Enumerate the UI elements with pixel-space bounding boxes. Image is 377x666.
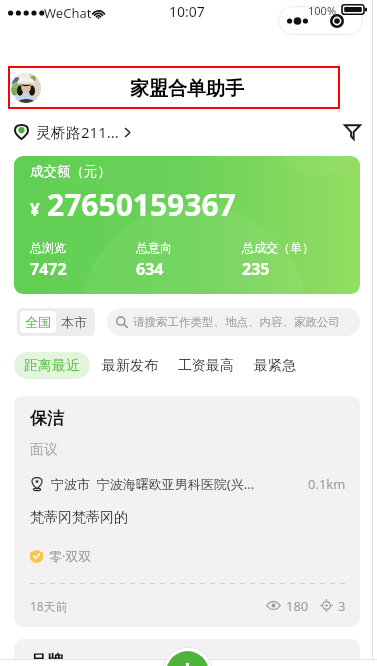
staticText: 成交额（元） <box>30 163 111 180</box>
button[interactable]: 全国 <box>20 311 56 333</box>
staticText: 家盟合单助手 <box>130 77 244 101</box>
staticText: 总浏览 <box>30 240 66 255</box>
button[interactable]: Profile <box>11 73 41 103</box>
staticText: 最紧急 <box>254 357 296 375</box>
button[interactable]: 保洁 <box>14 396 360 627</box>
staticText: 634 <box>136 258 164 280</box>
button[interactable]: Add <box>162 640 213 666</box>
staticText: 全国 <box>25 314 51 330</box>
button[interactable]: More <box>287 16 308 26</box>
staticText: 3 <box>338 597 346 615</box>
staticText: 27650159367 <box>47 184 236 225</box>
staticText: 工资最高 <box>178 357 234 375</box>
button[interactable]: 本市 <box>56 311 92 333</box>
button[interactable]: 品牌 <box>14 639 360 666</box>
staticText: 宁波市 宁波海曙欧亚男科医院(兴... <box>51 475 255 493</box>
staticText: 灵桥路211... <box>36 122 119 142</box>
staticText: WeChat <box>44 4 92 22</box>
staticText: 距离最近 <box>24 357 80 375</box>
staticText: 本市 <box>61 314 87 330</box>
button[interactable]: Filter <box>339 119 365 145</box>
staticText: 零·双双 <box>49 547 92 565</box>
button[interactable]: 工资最高 <box>178 352 234 379</box>
staticText: 0.1km <box>308 475 346 493</box>
staticText: 7472 <box>30 258 67 280</box>
staticText: 保洁 <box>30 408 64 429</box>
staticText: 请搜索工作类型、地点、内容、家政公司 <box>133 315 340 329</box>
staticText: 总意向 <box>136 240 172 255</box>
staticText: 235 <box>242 258 270 280</box>
button[interactable]: 请搜索工作类型、地点、内容、家政公司 <box>116 308 354 336</box>
staticText: 品牌 <box>30 651 64 666</box>
staticText: 100% <box>308 3 337 18</box>
staticText: 180 <box>286 597 309 615</box>
staticText: 18天前 <box>30 598 68 614</box>
button[interactable]: 最紧急 <box>254 352 296 379</box>
button[interactable]: 灵桥路211... <box>14 122 131 142</box>
staticText: 总成交（单） <box>242 240 314 255</box>
button[interactable]: 最新发布 <box>102 352 158 379</box>
staticText: 梵蒂冈梵蒂冈的 <box>30 509 128 527</box>
button[interactable]: 距离最近 <box>24 352 80 379</box>
staticText: 10:07 <box>169 2 205 21</box>
staticText: 最新发布 <box>102 357 158 375</box>
staticText: ¥ <box>30 198 40 221</box>
button[interactable]: Close <box>330 14 344 28</box>
staticText: 面议 <box>30 441 58 459</box>
